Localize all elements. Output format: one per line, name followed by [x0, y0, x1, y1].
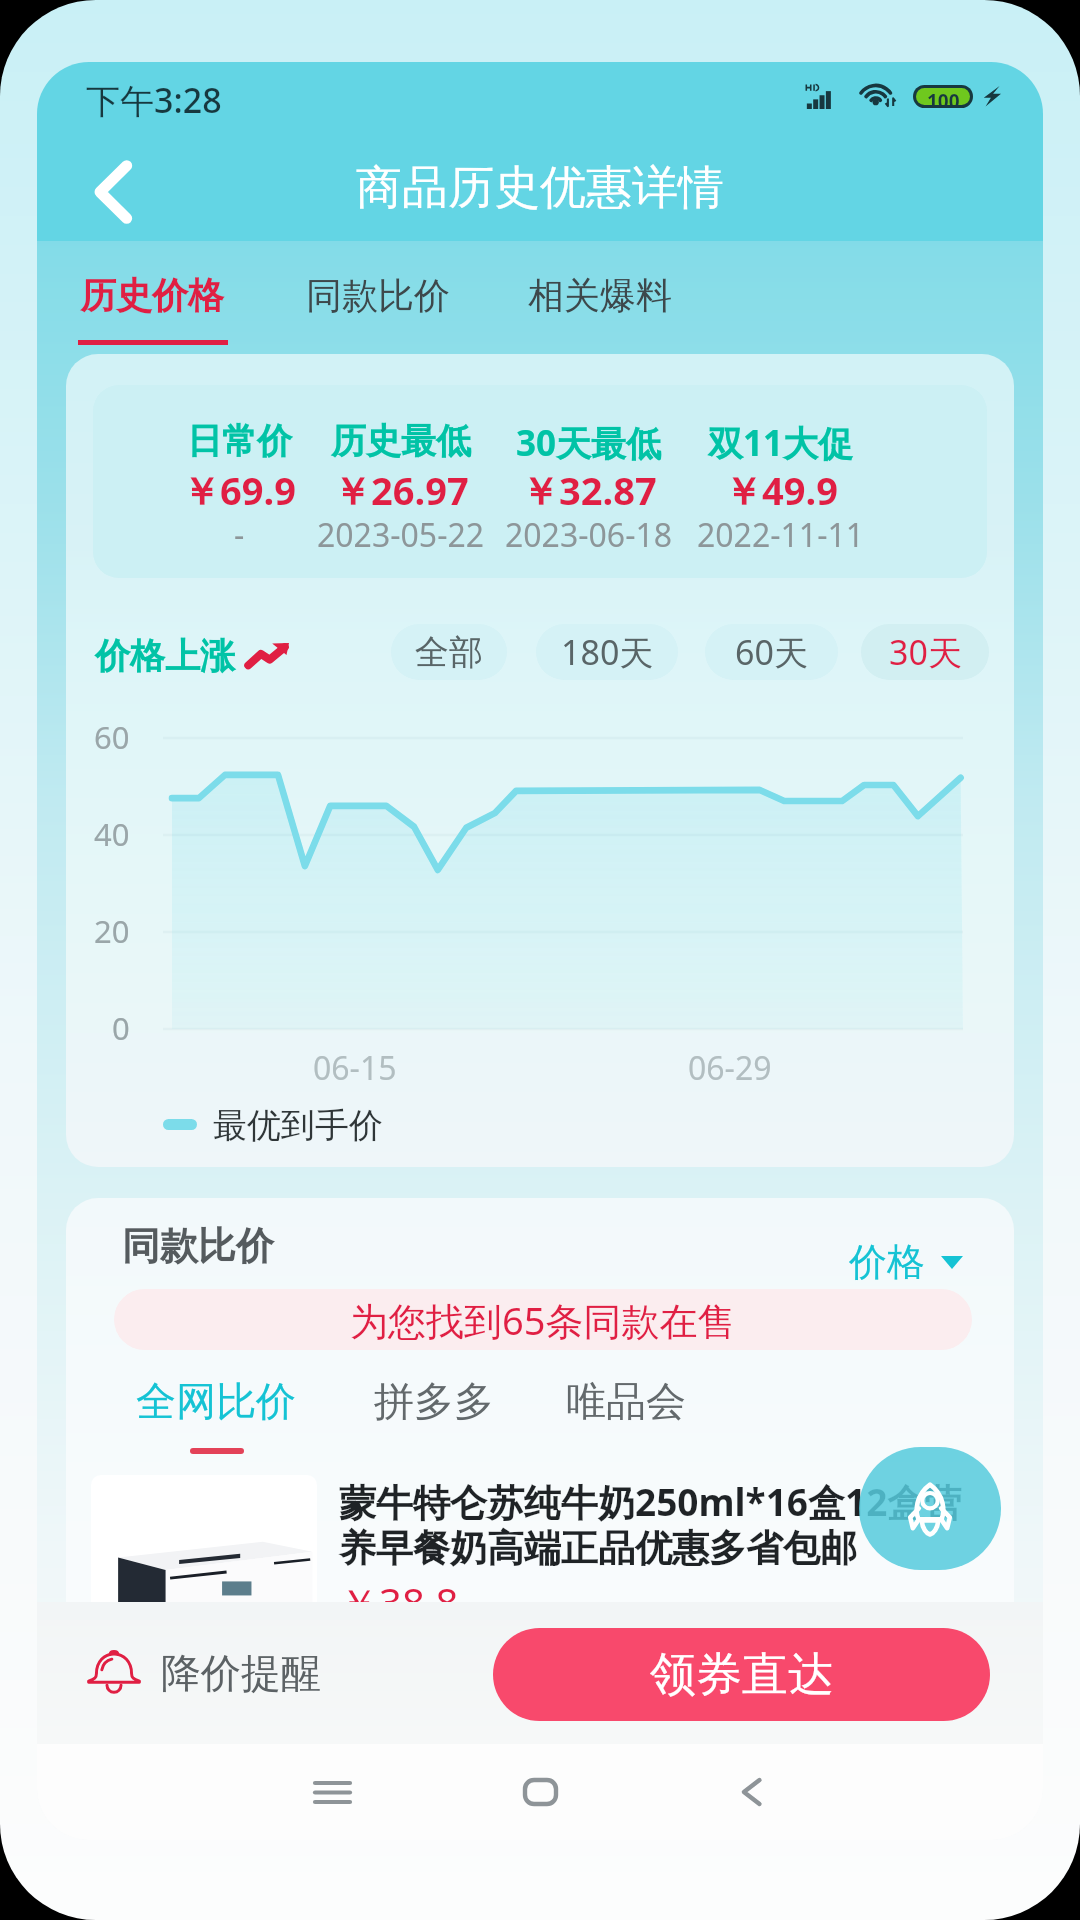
- staticText: ￥69.9: [182, 464, 296, 516]
- staticText: ￥26.97: [333, 464, 469, 516]
- staticText: 30天最低: [516, 419, 662, 467]
- button[interactable]: 领券直达: [493, 1628, 990, 1721]
- staticText: 30天: [889, 629, 962, 675]
- staticText: 唯品会: [566, 1376, 686, 1426]
- button[interactable]: 降价提醒: [87, 1631, 321, 1715]
- staticText: 100: [927, 88, 960, 105]
- staticText: ￥38.8: [339, 1575, 459, 1630]
- staticText: 06-15: [313, 1046, 397, 1090]
- button[interactable]: 180天: [536, 624, 678, 680]
- button[interactable]: Back: [65, 144, 161, 240]
- staticText: 拼多多: [374, 1376, 494, 1426]
- staticText: 同款比价: [306, 273, 450, 318]
- button[interactable]: Back: [701, 1747, 801, 1837]
- staticText: 历史价格: [80, 273, 224, 318]
- button[interactable]: 历史价格: [80, 262, 230, 352]
- staticText: 2023-06-18: [505, 513, 673, 557]
- staticText: 历史最低: [331, 419, 471, 463]
- staticText: 下午3:28: [86, 77, 222, 123]
- button[interactable]: 全部: [391, 624, 507, 680]
- staticText: 180天: [561, 629, 654, 675]
- staticText: 价格上涨: [95, 634, 235, 678]
- staticText: ￥49.9: [724, 464, 838, 516]
- staticText: 领券直达: [650, 1646, 834, 1704]
- staticText: 降价提醒: [161, 1648, 321, 1698]
- staticText: 同款比价: [122, 1222, 274, 1270]
- staticText: 商品历史优惠详情: [356, 159, 724, 217]
- staticText: ￥32.87: [521, 464, 657, 516]
- button[interactable]: Scroll to top: [859, 1447, 1001, 1570]
- staticText: 60: [94, 716, 130, 758]
- staticText: 价格: [849, 1238, 925, 1286]
- button[interactable]: 相关爆料: [528, 262, 672, 352]
- staticText: 相关爆料: [528, 273, 672, 318]
- staticText: -: [234, 513, 245, 557]
- staticText: 全网比价: [136, 1376, 296, 1426]
- staticText: 06-29: [688, 1046, 772, 1090]
- staticText: 20: [94, 910, 130, 952]
- button[interactable]: Recent apps: [282, 1747, 382, 1837]
- staticText: 2022-11-11: [697, 513, 865, 557]
- button[interactable]: 唯品会: [566, 1376, 686, 1466]
- staticText: 2023-05-22: [317, 513, 485, 557]
- staticText: 蒙牛特仑苏纯牛奶250ml*16盒12盒营养早餐奶高端正品优惠多省包邮: [339, 1476, 975, 1572]
- staticText: 40: [94, 813, 130, 855]
- button[interactable]: 30天: [861, 624, 989, 680]
- staticText: 日常价: [187, 419, 292, 463]
- staticText: 全部: [415, 631, 483, 674]
- button[interactable]: 同款比价: [306, 262, 450, 352]
- staticText: 0: [112, 1007, 130, 1049]
- staticText: 为您找到65条同款在售: [350, 1294, 736, 1346]
- button[interactable]: 价格: [849, 1234, 963, 1290]
- button[interactable]: Home: [490, 1747, 590, 1837]
- button[interactable]: 全网比价: [136, 1376, 296, 1466]
- staticText: 60天: [735, 629, 808, 675]
- button[interactable]: 拼多多: [374, 1376, 494, 1466]
- button[interactable]: 60天: [705, 624, 838, 680]
- staticText: 最优到手价: [213, 1104, 383, 1147]
- staticText: 双11大促: [708, 419, 854, 467]
